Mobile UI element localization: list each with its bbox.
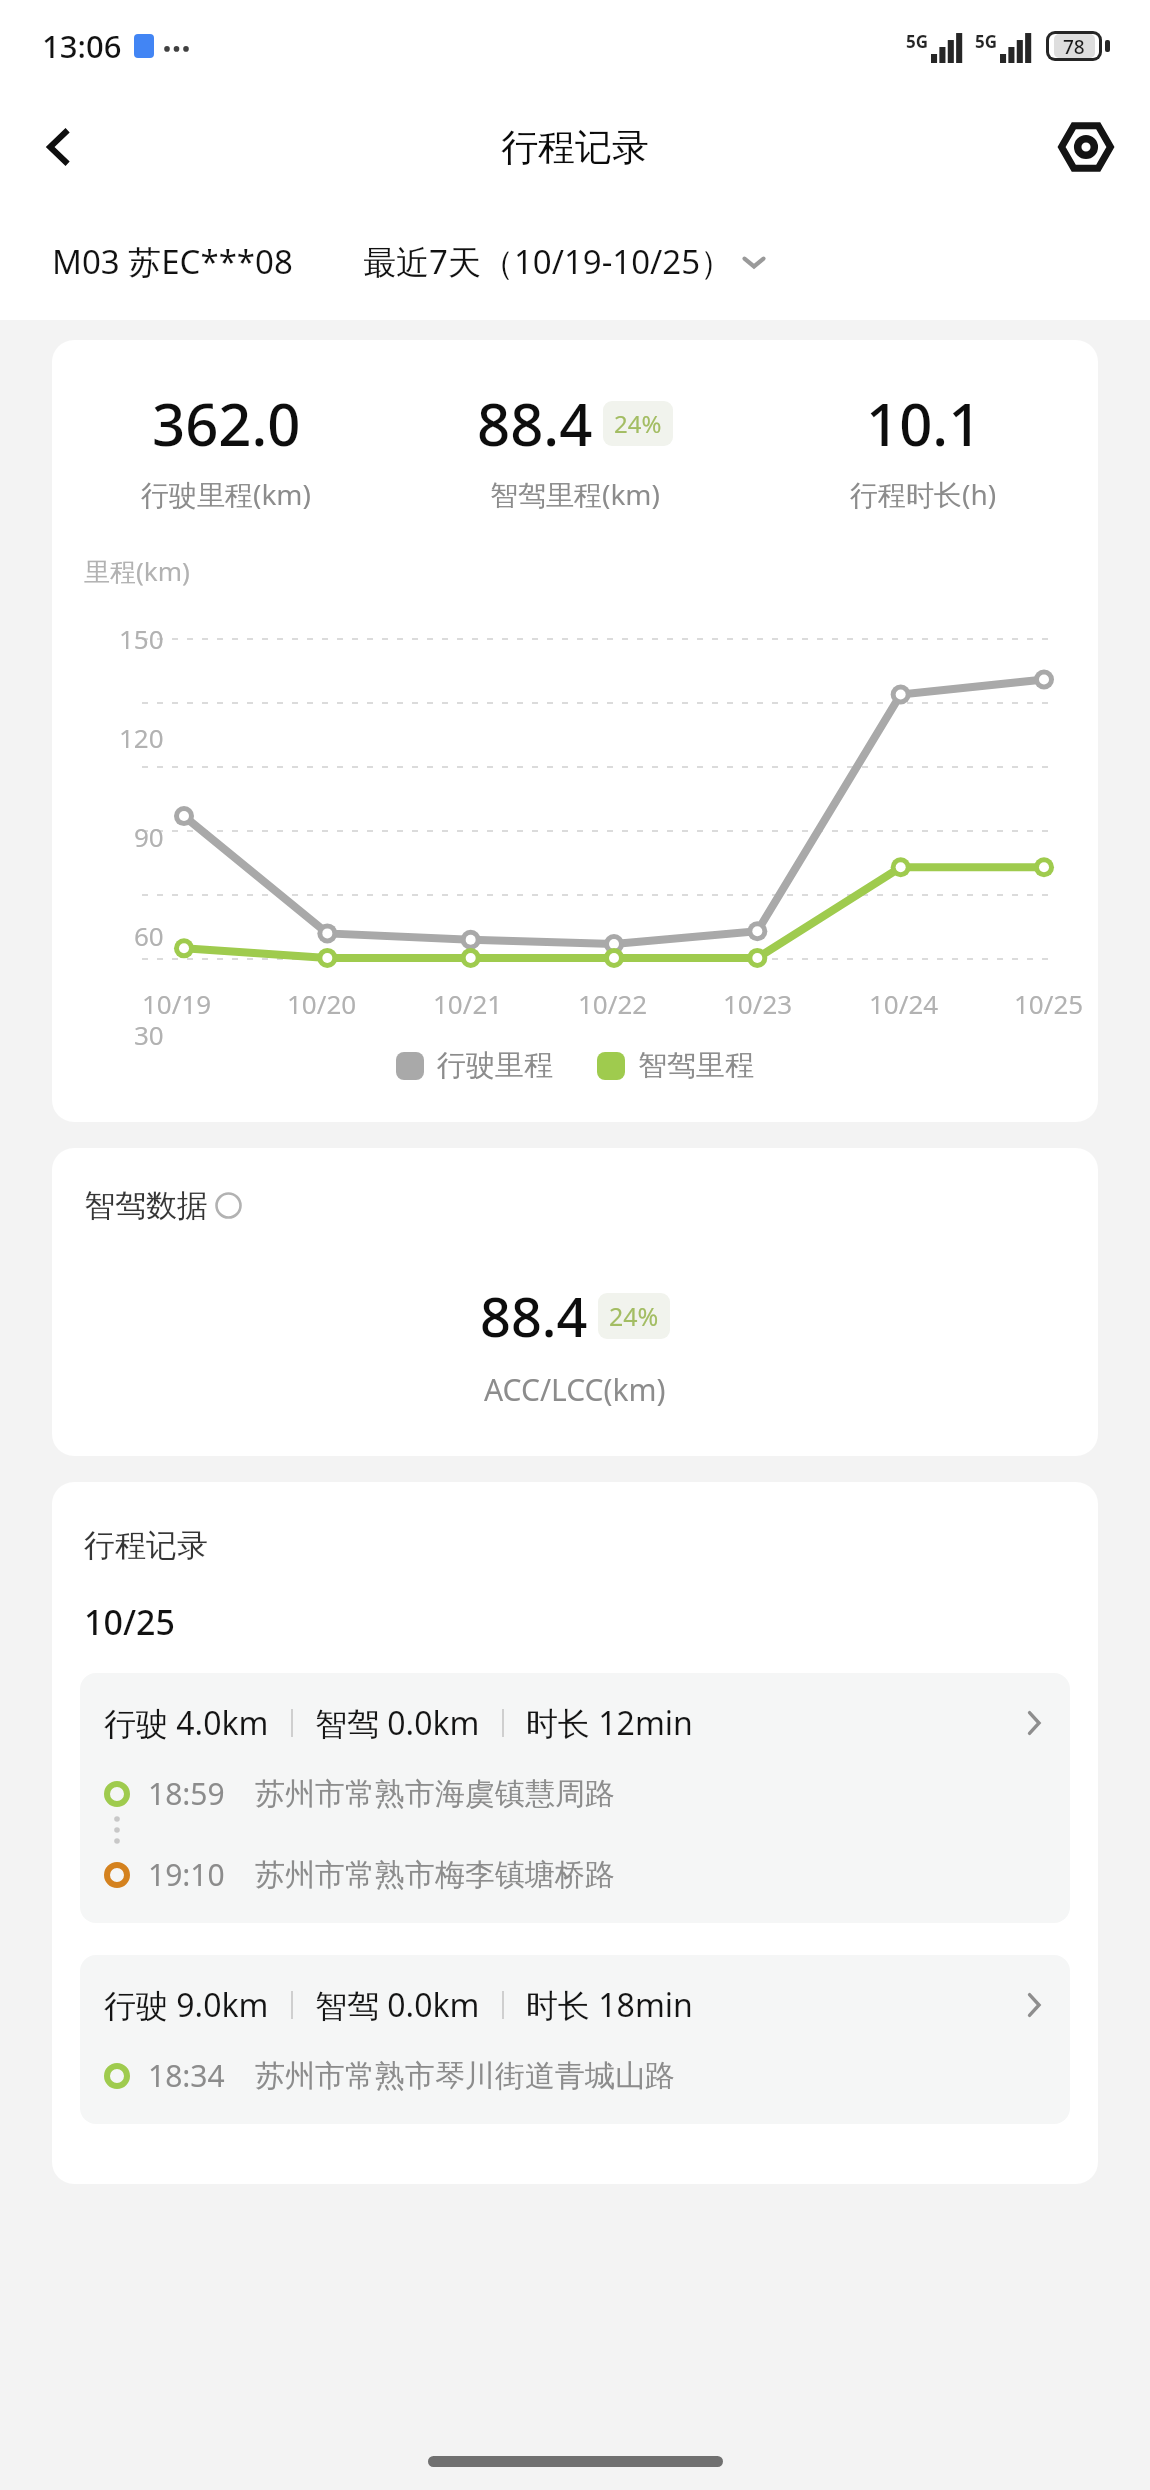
staticText: 行程记录 — [84, 1526, 208, 1565]
staticText: 10/21 — [433, 986, 503, 1021]
staticText: 5G — [975, 30, 998, 53]
staticText: 30 — [134, 1017, 164, 1052]
staticText: 苏州市常熟市梅李镇塘桥路 — [255, 1856, 615, 1894]
staticText: 362.0 — [152, 384, 301, 463]
staticText: 10/25 — [1014, 986, 1084, 1021]
button[interactable]: 最近7天（10/19-10/25） — [363, 239, 768, 284]
staticText: 60 — [134, 918, 164, 953]
staticText: 90 — [134, 819, 164, 854]
staticText: 智驾 0.0km — [315, 1983, 480, 2027]
staticText: 智驾里程 — [638, 1047, 754, 1084]
button[interactable]: 362.0 — [52, 340, 1098, 1122]
staticText: M03 苏EC***08 — [52, 239, 293, 284]
staticText: 120 — [119, 720, 164, 755]
staticText: 10/24 — [869, 986, 939, 1021]
button[interactable]: 行驶 4.0km — [80, 1673, 1070, 1923]
staticText: 10/25 — [84, 1599, 175, 1645]
staticText: 10/23 — [723, 986, 793, 1021]
staticText: 24% — [609, 1299, 659, 1333]
staticText: 智驾 0.0km — [315, 1701, 480, 1745]
staticText: 10/20 — [287, 986, 357, 1021]
staticText: 行驶里程(km) — [141, 475, 311, 513]
staticText: 时长 18min — [526, 1983, 693, 2027]
staticText: 最近7天（10/19-10/25） — [363, 239, 734, 284]
button[interactable]: Settings — [1048, 109, 1124, 185]
staticText: 行驶里程 — [437, 1047, 553, 1084]
staticText: 智驾数据 — [84, 1186, 208, 1225]
staticText: 里程(km) — [84, 553, 190, 589]
staticText: 13:06 — [42, 25, 122, 67]
staticText: 行程时长(h) — [850, 475, 997, 513]
staticText: 24% — [614, 407, 662, 440]
staticText: 88.4 — [480, 1279, 588, 1353]
staticText: 10/19 — [142, 986, 212, 1021]
staticText: 苏州市常熟市海虞镇慧周路 — [255, 1775, 615, 1813]
staticText: 时长 12min — [526, 1701, 693, 1745]
staticText: 行驶 4.0km — [104, 1701, 269, 1745]
button[interactable]: Back — [22, 109, 98, 185]
staticText: 10/22 — [578, 986, 648, 1021]
staticText: 行驶 9.0km — [104, 1983, 269, 2027]
staticText: 88.4 — [477, 384, 593, 463]
staticText: 150 — [119, 621, 164, 656]
staticText: 18:59 — [148, 1773, 225, 1814]
button[interactable]: M03 苏EC***08 — [52, 239, 293, 284]
staticText: 行程记录 — [501, 124, 649, 171]
staticText: 苏州市常熟市琴川街道青城山路 — [255, 2057, 675, 2095]
staticText: 智驾里程(km) — [490, 475, 660, 513]
staticText: 18:34 — [148, 2055, 225, 2096]
staticText: 19:10 — [148, 1854, 225, 1895]
staticText: 78 — [1063, 34, 1085, 58]
button[interactable]: 智驾数据 — [52, 1148, 1098, 1456]
staticText: 10.1 — [866, 384, 982, 463]
staticText: 5G — [906, 30, 929, 53]
staticText: ACC/LCC(km) — [484, 1369, 666, 1410]
button[interactable]: 行驶 9.0km — [80, 1955, 1070, 2124]
